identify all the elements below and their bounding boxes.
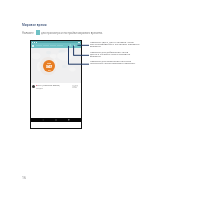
staticText: для просмотра и настройки мирового време… [41,31,103,35]
staticText: ПН [48,69,51,71]
button[interactable]: Поиск [69,44,72,47]
button[interactable]: Сеул [43,60,55,72]
staticText: Нажмите здесь, для установки часов место… [90,40,143,48]
staticText: 3:07 [46,65,52,69]
staticText: Сеул (Мировое время) [37,84,60,87]
button[interactable]: Добавить [73,44,76,47]
staticText: 16 [22,175,26,180]
button[interactable]: Ещё [77,44,80,47]
staticText: Нажмите для добавления часов другого час… [90,50,143,58]
staticText: 3:07 [72,85,78,89]
button[interactable]: Последние [68,119,70,121]
staticText: Сегодня [36,87,43,89]
button[interactable]: Сеул (Мировое время) [32,83,78,90]
staticText: Нажмите [22,31,34,35]
button[interactable]: Назад [42,119,44,121]
staticText: Нажмите для изменения настроек просмотра… [90,59,143,65]
staticText: Сеул [47,62,52,65]
staticText: Мировое время [22,23,47,27]
